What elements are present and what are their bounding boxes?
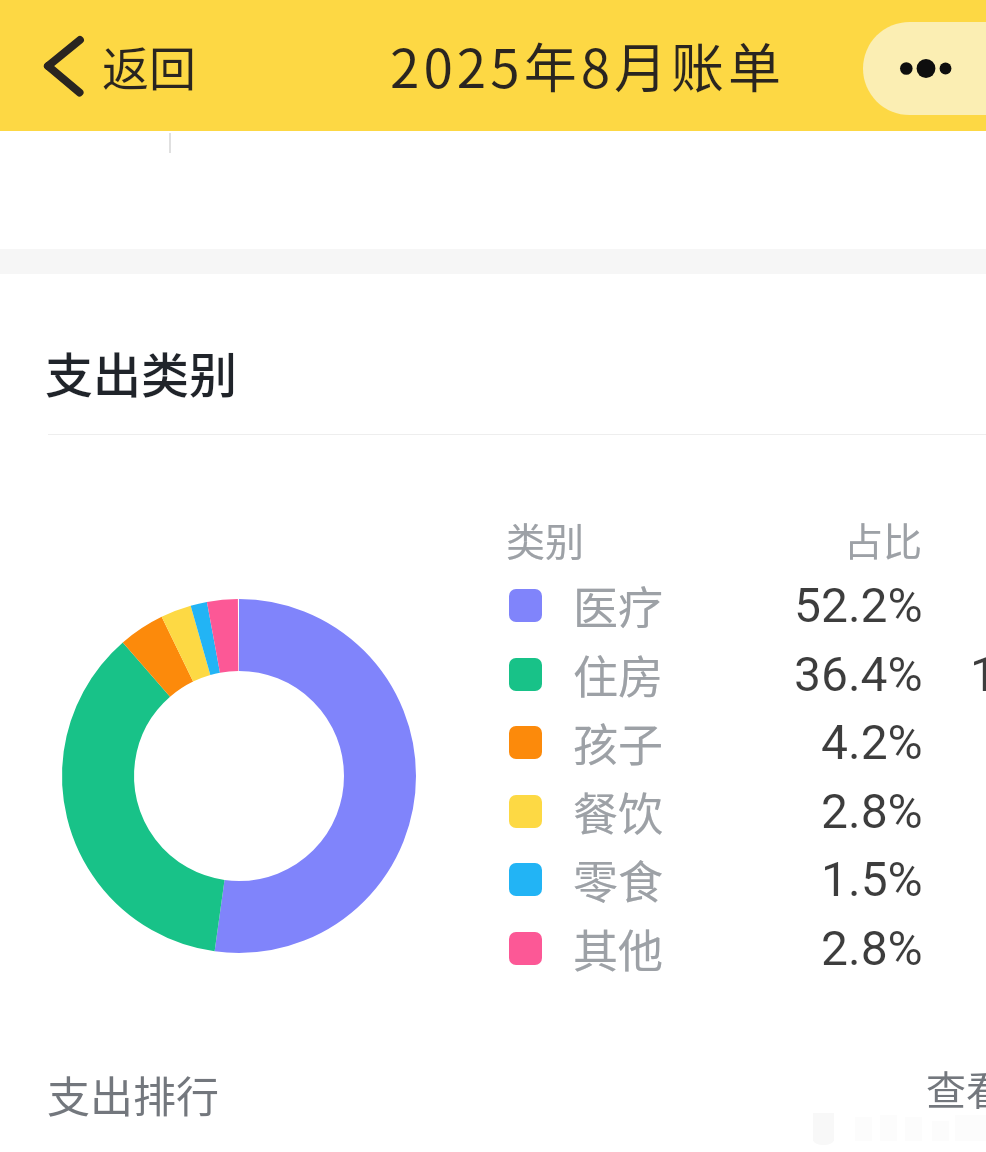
staticText: 1 bbox=[970, 646, 986, 702]
staticText: 占比 bbox=[844, 511, 923, 567]
button[interactable]: 其他 bbox=[0, 927, 986, 983]
button[interactable]: 返回 bbox=[44, 0, 196, 131]
staticText: 类别 bbox=[506, 511, 585, 567]
staticText: 返回 bbox=[102, 31, 196, 99]
staticText: 1.5% bbox=[821, 851, 923, 907]
button[interactable]: 零食 bbox=[0, 858, 986, 914]
staticText: 支出排行 bbox=[47, 1063, 219, 1125]
staticText: 其他 bbox=[573, 916, 664, 972]
button[interactable]: More options bbox=[863, 22, 986, 115]
staticText: 4.2% bbox=[821, 714, 923, 770]
staticText: 2.8% bbox=[821, 783, 923, 839]
button[interactable]: 餐饮 bbox=[0, 790, 986, 846]
button[interactable]: 孩子 bbox=[0, 721, 986, 777]
staticText: 2.8% bbox=[821, 920, 923, 976]
staticText: 孩子 bbox=[573, 710, 664, 766]
button[interactable]: 住房 bbox=[0, 653, 986, 709]
staticText: 餐饮 bbox=[573, 779, 664, 835]
staticText: 2025年8月账单 bbox=[390, 27, 786, 104]
staticText: 支出类别 bbox=[45, 337, 238, 407]
staticText: 住房 bbox=[573, 642, 664, 698]
staticText: 36.4% bbox=[794, 646, 923, 702]
staticText: 52.2% bbox=[794, 577, 923, 633]
button[interactable]: 支出排行 bbox=[0, 1040, 986, 1132]
staticText: 医疗 bbox=[573, 573, 664, 629]
staticText: 零食 bbox=[573, 847, 664, 903]
button[interactable]: 医疗 bbox=[0, 584, 986, 640]
staticText: 查看 bbox=[926, 1059, 986, 1117]
